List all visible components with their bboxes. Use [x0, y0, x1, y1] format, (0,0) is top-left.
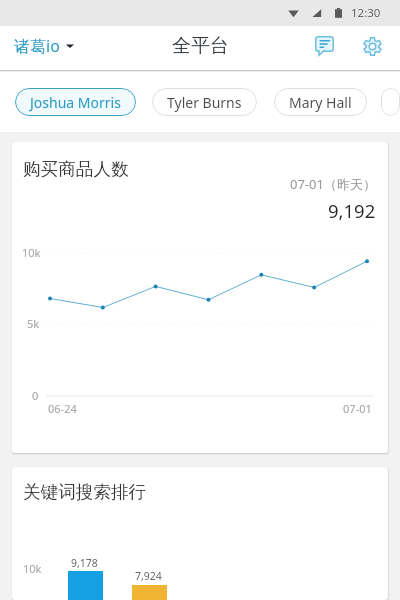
button[interactable]: Settings [353, 27, 391, 65]
staticText: 7,924 [135, 569, 162, 583]
staticText: 诸葛io [14, 35, 60, 57]
button[interactable]: Mark Lee [381, 88, 400, 116]
button[interactable]: 关键词搜索排行 [12, 467, 388, 600]
button[interactable]: Mary Hall [274, 88, 367, 116]
staticText: Mary Hall [289, 93, 352, 112]
staticText: 10k [23, 561, 42, 576]
button[interactable]: 购买商品人数 [12, 142, 388, 453]
staticText: 0 [32, 388, 39, 403]
button[interactable]: Joshua Morris [15, 88, 136, 116]
staticText: 关键词搜索排行 [23, 481, 147, 503]
staticText: 06-24 [48, 401, 77, 416]
staticText: 07-01（昨天） [290, 175, 376, 193]
button[interactable]: Messages [305, 27, 343, 65]
staticText: 10k [22, 245, 41, 260]
staticText: 12:30 [351, 5, 381, 21]
staticText: Tyler Burns [167, 93, 242, 112]
staticText: 07-01 [343, 401, 372, 416]
staticText: 5k [27, 316, 40, 331]
staticText: 9,178 [71, 556, 98, 570]
staticText: 全平台 [172, 34, 229, 58]
staticText: 购买商品人数 [23, 158, 129, 180]
staticText: 9,192 [328, 198, 376, 223]
staticText: Joshua Morris [30, 93, 121, 112]
button[interactable]: 诸葛io [14, 35, 74, 57]
button[interactable]: Tyler Burns [152, 88, 257, 116]
